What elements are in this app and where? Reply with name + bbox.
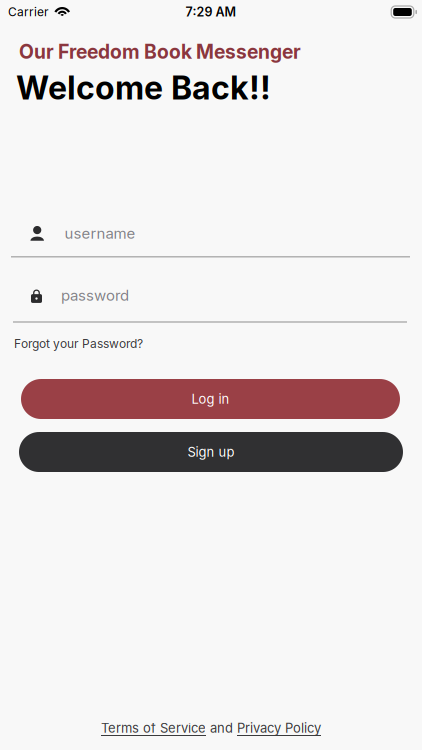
button[interactable]: username <box>0 224 422 257</box>
staticText: Privacy Policy <box>237 720 321 736</box>
staticText: and <box>206 720 237 736</box>
button[interactable]: Sign up <box>0 432 422 472</box>
button[interactable]: Forgot your Password? <box>0 336 143 351</box>
staticText: Sign up <box>187 444 234 460</box>
staticText: 7:29 AM <box>185 4 236 19</box>
staticText: Log in <box>191 391 229 407</box>
staticText: username <box>64 224 135 242</box>
button[interactable]: password <box>0 286 422 322</box>
staticText: password <box>61 286 129 304</box>
button[interactable]: Log in <box>0 379 422 419</box>
staticText: Terms of Service <box>101 720 206 736</box>
staticText: Welcome Back!! <box>16 68 271 107</box>
button[interactable]: Privacy Policy <box>237 720 321 736</box>
button[interactable]: Terms of Service <box>101 720 206 736</box>
staticText: Carrier <box>8 5 49 19</box>
staticText: Forgot your Password? <box>14 336 143 351</box>
staticText: Our Freedom Book Messenger <box>19 40 301 63</box>
